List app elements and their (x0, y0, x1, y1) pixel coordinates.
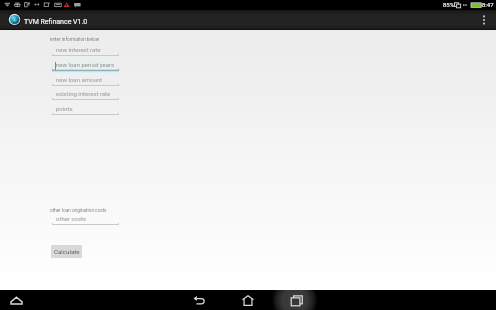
button[interactable]: Home (226, 290, 270, 310)
button[interactable]: Expand notifications (6, 290, 26, 310)
staticText: existing interest rate (56, 90, 111, 97)
button[interactable]: More options (472, 10, 496, 30)
button[interactable]: Back (177, 290, 221, 310)
button[interactable]: new loan amount (52, 75, 119, 88)
button[interactable]: new interest rate (52, 45, 119, 58)
button[interactable]: Calculate (51, 245, 82, 258)
staticText: other costs (56, 215, 87, 222)
staticText: TVM Refinance V1.0 (24, 18, 88, 26)
button[interactable]: Recent apps (275, 290, 319, 310)
staticText: new loan amount (56, 76, 102, 83)
staticText: 85% (443, 1, 455, 8)
staticText: enter information below (50, 37, 100, 42)
staticText: new interest rate (56, 46, 101, 53)
staticText: new loan period years (56, 61, 115, 68)
staticText: other loan origination costs (50, 208, 107, 213)
staticText: Calculate (54, 248, 80, 255)
staticText: 3:47 (482, 1, 494, 8)
staticText: points (56, 105, 73, 112)
button[interactable]: new loan period years (52, 60, 119, 73)
button[interactable]: points (52, 104, 119, 117)
button[interactable]: other costs (52, 214, 119, 227)
button[interactable]: existing interest rate (52, 89, 119, 102)
